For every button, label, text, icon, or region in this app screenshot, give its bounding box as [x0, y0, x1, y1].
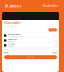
button[interactable]: Track	[48, 28, 57, 31]
staticText: SWIFT	[9, 3, 21, 9]
button[interactable]: Garlic bread	[2, 38, 59, 43]
staticText: Track order	[43, 4, 58, 8]
staticText: Total	[4, 52, 8, 54]
button[interactable]: Reorder	[4, 55, 57, 59]
staticText: Arriving in 25 min	[4, 25, 15, 27]
button[interactable]: Margherita pizza	[2, 33, 59, 38]
staticText: Track	[50, 29, 55, 31]
staticText: Margherita pizza	[8, 34, 21, 35]
staticText: 330 ml can	[8, 45, 15, 47]
button[interactable]: Track order	[43, 4, 58, 8]
button[interactable]: Home	[5, 4, 8, 8]
staticText: Coca-Cola	[8, 43, 15, 45]
staticText: Garlic bread	[8, 38, 17, 40]
staticText: Subtotal	[4, 49, 9, 51]
staticText: £12	[54, 35, 57, 36]
staticText: With herbs	[8, 41, 15, 42]
staticText: Reorder	[27, 56, 34, 58]
staticText: £2	[55, 44, 57, 46]
button[interactable]: Coca-Cola	[2, 43, 59, 48]
staticText: Your order	[4, 21, 20, 25]
staticText: Large · extra cheese	[8, 36, 23, 37]
staticText: £21.50	[52, 52, 57, 54]
staticText: £18.00	[52, 49, 57, 51]
